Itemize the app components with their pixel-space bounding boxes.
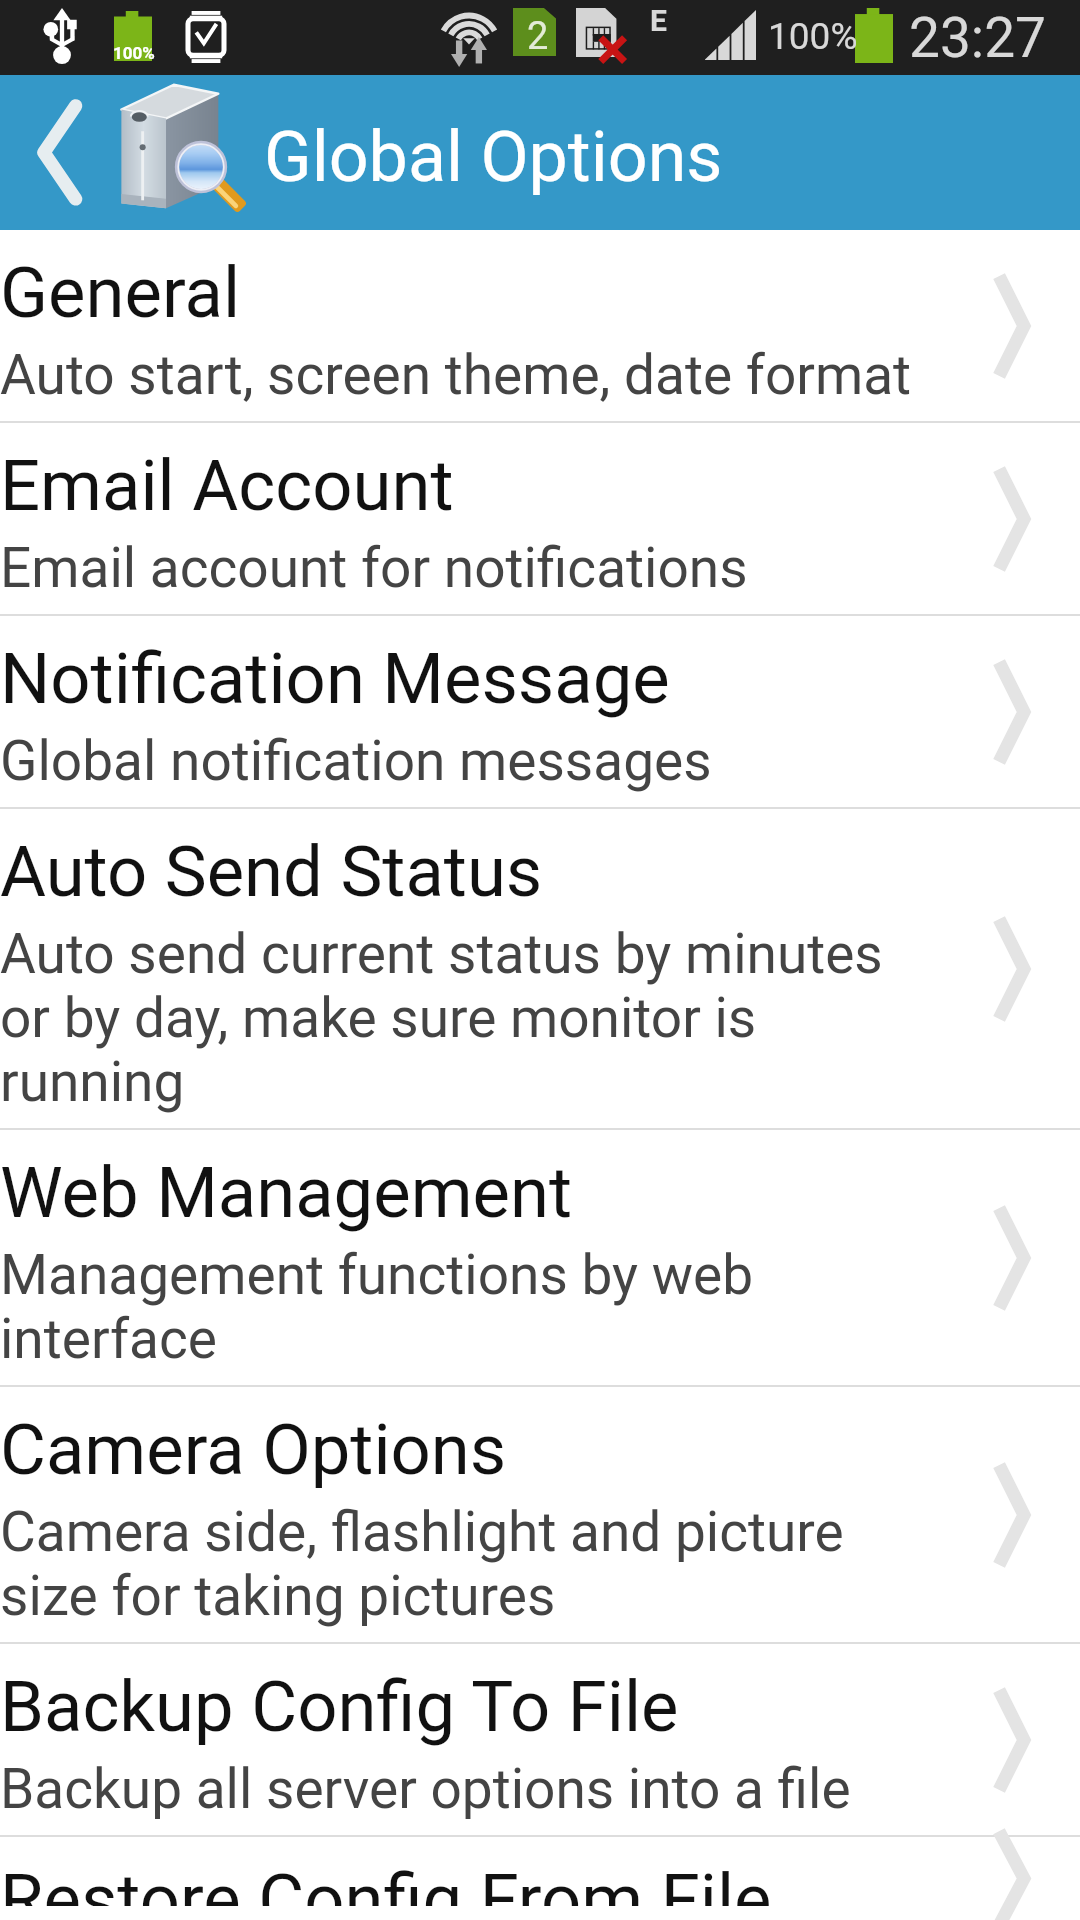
staticText: Global Options [264,116,723,198]
staticText: Camera Options [0,1409,507,1492]
button[interactable]: Notification Message [0,616,1080,807]
staticText: Notification Message [0,638,670,721]
staticText: 2 [527,14,549,59]
staticText: Restore Config From File [0,1859,772,1906]
button[interactable]: Email Account [0,423,1080,614]
staticText: 23:27 [909,6,1046,70]
button[interactable]: Back [0,75,110,230]
staticText: Management functions by web interface [0,1243,930,1371]
staticText: Email Account [0,445,454,528]
button[interactable]: General [0,230,1080,421]
staticText: Backup all server options into a file [0,1757,851,1821]
button[interactable]: Camera Options [0,1387,1080,1642]
staticText: Auto Send Status [0,831,543,914]
staticText: Web Management [0,1152,573,1235]
staticText: Email account for notifications [0,536,748,600]
staticText: Backup Config To File [0,1666,679,1749]
staticText: Global notification messages [0,729,712,793]
staticText: E [650,3,667,38]
staticText: 100% [768,15,858,58]
staticText: Auto start, screen theme, date format [0,343,912,407]
button[interactable]: Web Management [0,1130,1080,1385]
staticText: Camera side, flashlight and picture size… [0,1500,930,1628]
button[interactable]: Auto Send Status [0,809,1080,1128]
staticText: Auto send current status by minutes or b… [0,922,930,1114]
button[interactable]: Backup Config To File [0,1644,1080,1835]
staticText: General [0,252,241,335]
button[interactable]: Restore Config From File [0,1837,1080,1920]
staticText: 100% [113,43,155,63]
